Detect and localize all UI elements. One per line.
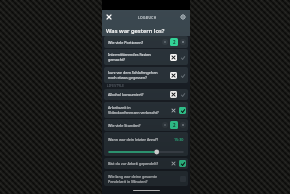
button[interactable]: Value (170, 38, 178, 46)
button[interactable]: Intermittierendes Fasten gemacht? (104, 49, 188, 65)
staticText: 2 (173, 122, 176, 128)
button[interactable]: Wie viele Portionen? (104, 36, 188, 48)
button[interactable]: Wie lang war deine gesamte Pendelzeit in… (104, 171, 188, 186)
staticText: Arbeitszeit in Videokonferenzen verbrach… (108, 105, 170, 115)
button[interactable]: Yes (179, 107, 186, 114)
button[interactable]: kurz vor dem Schlafengehen noch etwas ge… (104, 67, 188, 83)
button[interactable]: Decrease (162, 39, 168, 45)
staticText: 2 (173, 39, 176, 45)
button[interactable]: Increase (180, 39, 186, 45)
button[interactable]: Yes (179, 91, 186, 98)
staticText: kurz vor dem Schlafengehen noch etwas ge… (108, 70, 170, 80)
button[interactable]: Decrease (162, 122, 168, 128)
staticText: Wie viele Stunden? (108, 123, 162, 128)
staticText: Intermittierendes Fasten gemacht? (108, 52, 170, 62)
staticText: Alkohol konsumiert? (108, 92, 170, 97)
staticText: LIFESTYLE (107, 84, 125, 88)
staticText: Bist du zur Arbeit gependelt? (108, 161, 170, 166)
button[interactable]: Yes (179, 54, 186, 61)
button[interactable]: Arbeitszeit in Videokonferenzen verbrach… (104, 102, 188, 118)
button[interactable]: No (170, 160, 177, 167)
button[interactable]: No (170, 54, 177, 61)
button[interactable]: No (170, 91, 177, 98)
button[interactable]: No (170, 107, 177, 114)
button[interactable]: Yes (179, 72, 186, 79)
staticText: Was war gestern los? (106, 27, 165, 35)
button[interactable]: Increase (180, 122, 186, 128)
staticText: LOGBUCH (138, 15, 157, 19)
button[interactable]: Yes (179, 160, 186, 167)
button[interactable]: Wann war dein letzter Anruf? (104, 132, 188, 156)
button[interactable]: Settings (176, 10, 190, 24)
staticText: Wie viele Portionen? (108, 40, 162, 45)
staticText: 15:30 (174, 137, 184, 142)
staticText: Wann war dein letzter Anruf? (108, 137, 174, 142)
button[interactable]: No (170, 72, 177, 79)
button[interactable]: Alkohol konsumiert? (104, 89, 188, 100)
staticText: Wie lang war deine gesamte Pendelzeit in… (108, 174, 180, 184)
button[interactable]: Value (170, 121, 178, 129)
button[interactable]: Close (102, 10, 116, 24)
button[interactable]: Bist du zur Arbeit gependelt? (104, 158, 188, 169)
button[interactable]: Wie viele Stunden? (104, 119, 188, 131)
